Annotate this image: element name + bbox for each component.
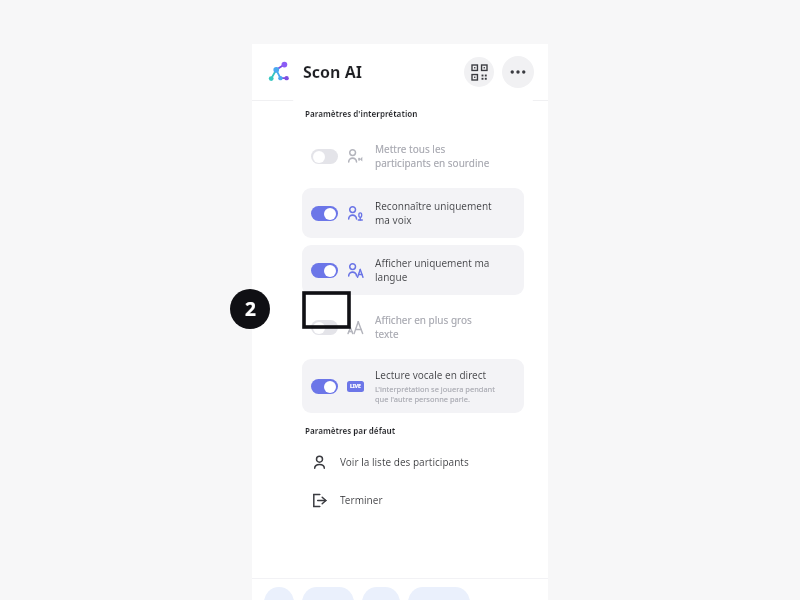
- button[interactable]: [362, 587, 400, 600]
- staticText: Mettre tous les participants en sourdine: [375, 142, 490, 170]
- button[interactable]: Toggle on: [311, 379, 338, 394]
- button[interactable]: [264, 587, 294, 600]
- button[interactable]: Terminer: [302, 484, 524, 516]
- staticText: Paramètres d'interprétation: [305, 108, 418, 119]
- button[interactable]: [302, 587, 354, 600]
- staticText: Lecture vocale en direct: [375, 368, 487, 382]
- button[interactable]: Toggle on: [311, 263, 338, 278]
- button[interactable]: Toggle on: [302, 359, 524, 413]
- button[interactable]: Scan QR code: [464, 57, 494, 87]
- button[interactable]: Toggle off: [302, 302, 524, 352]
- button[interactable]: Toggle on: [302, 245, 524, 295]
- button[interactable]: Toggle on: [311, 206, 338, 221]
- staticText: Afficher uniquement ma langue: [375, 256, 490, 284]
- button[interactable]: Voir la liste des participants: [302, 446, 524, 478]
- button[interactable]: More options: [502, 56, 534, 88]
- staticText: L'interprétation se jouera pendant que l…: [375, 384, 495, 404]
- staticText: Scon AI: [303, 61, 362, 83]
- staticText: Voir la liste des participants: [340, 455, 469, 469]
- button[interactable]: Toggle off: [311, 149, 338, 164]
- staticText: Paramètres par défaut: [305, 425, 396, 436]
- staticText: Terminer: [340, 493, 383, 507]
- staticText: LIVE: [350, 383, 361, 390]
- button[interactable]: Toggle on: [302, 188, 524, 238]
- button[interactable]: Toggle off: [302, 131, 524, 181]
- button[interactable]: [408, 587, 470, 600]
- staticText: 2: [245, 296, 256, 322]
- staticText: Reconnaître uniquement ma voix: [375, 199, 492, 227]
- button[interactable]: Toggle off: [311, 320, 338, 335]
- staticText: Afficher en plus gros texte: [375, 313, 472, 341]
